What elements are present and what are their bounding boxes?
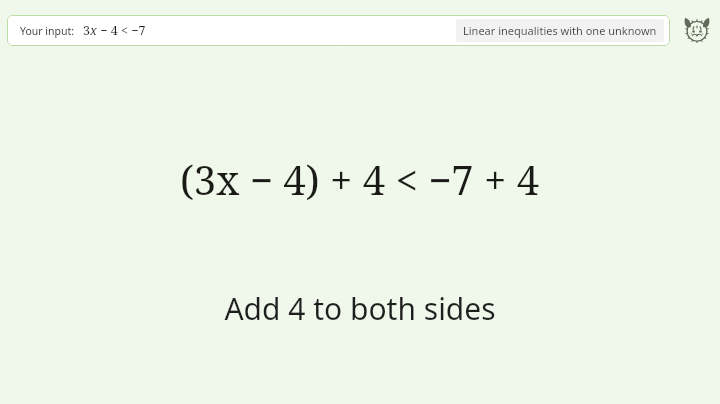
staticText: 3 [83, 22, 90, 39]
button[interactable]: Your input: [7, 15, 670, 46]
staticText: Linear inequalities with one unknown [463, 23, 657, 38]
staticText: − 4 < −7 [97, 22, 146, 39]
staticText: Add 4 to both sides [224, 288, 496, 329]
staticText: Your input: [20, 24, 75, 38]
button[interactable]: Linear inequalities with one unknown [456, 19, 664, 42]
staticText: (3x − 4) + 4 < −7 + 4 [180, 152, 540, 206]
button[interactable]: App logo [680, 13, 714, 47]
staticText: x [90, 22, 97, 39]
